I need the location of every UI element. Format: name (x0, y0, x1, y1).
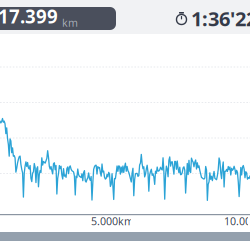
button[interactable]: 17.399 (0, 7, 116, 30)
staticText: 17.399 (0, 4, 58, 29)
staticText: km (62, 16, 78, 30)
staticText: 10.000 (224, 214, 250, 228)
staticText: 1:36'22" (191, 5, 250, 32)
staticText: 5.000km (91, 214, 134, 228)
button[interactable]: 1:36'22" (176, 7, 250, 30)
